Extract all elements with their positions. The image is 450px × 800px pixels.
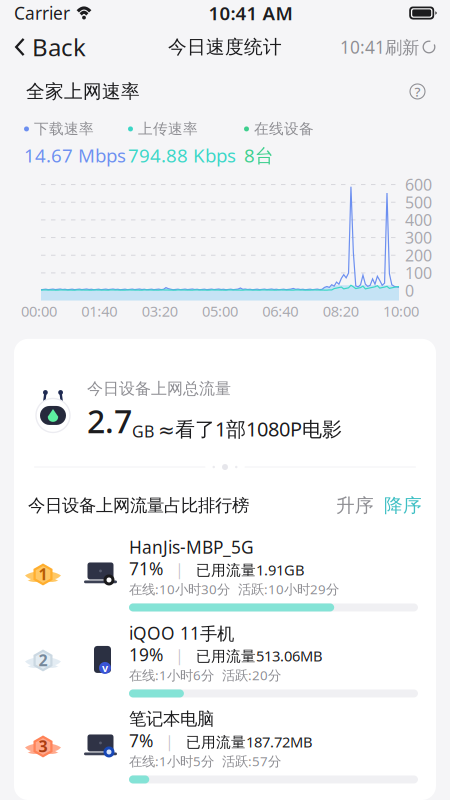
staticText: 升序: [336, 494, 374, 517]
staticText: |: [153, 730, 186, 751]
staticText: 7%: [129, 729, 153, 752]
staticText: 200: [405, 245, 432, 266]
staticText: 1: [38, 563, 47, 584]
staticText: |: [163, 558, 196, 579]
staticText: 10:00: [383, 301, 419, 321]
staticText: 在线设备: [254, 120, 314, 138]
button[interactable]: 降序: [384, 494, 422, 517]
staticText: Back: [32, 31, 86, 63]
staticText: ≈看了1部1080P电影: [158, 415, 342, 442]
staticText: 2: [38, 649, 47, 670]
staticText: 上传速率: [138, 120, 198, 138]
staticText: 794.88 Kbps: [128, 143, 236, 168]
staticText: 06:40: [262, 301, 298, 321]
button[interactable]: Back: [0, 25, 86, 69]
staticText: 14.67 Mbps: [24, 143, 126, 168]
staticText: 2.7: [87, 399, 132, 442]
staticText: 今日速度统计: [168, 35, 282, 58]
staticText: 100: [405, 262, 432, 283]
staticText: 08:20: [323, 301, 359, 321]
button[interactable]: Help: [409, 83, 426, 100]
button[interactable]: 10:41刷新: [340, 29, 450, 64]
staticText: 在线:10小时30分 活跃:10小时29分: [129, 580, 339, 598]
staticText: 已用流量1.91GB: [196, 560, 305, 579]
staticText: 500: [405, 192, 432, 213]
staticText: 3: [38, 735, 47, 756]
staticText: 已用流量187.72MB: [186, 732, 313, 751]
staticText: 8台: [244, 143, 274, 168]
button[interactable]: 升序: [336, 494, 374, 517]
staticText: iQOO 11手机: [129, 621, 234, 644]
staticText: 在线:1小时5分 活跃:57分: [129, 752, 281, 770]
staticText: 03:20: [142, 301, 178, 321]
staticText: 10:41 AM: [209, 1, 293, 25]
staticText: GB: [132, 421, 154, 442]
staticText: 0: [405, 280, 414, 301]
staticText: 下载速率: [34, 120, 94, 138]
staticText: 今日设备上网总流量: [87, 379, 231, 399]
staticText: 400: [405, 209, 432, 230]
staticText: 01:40: [81, 301, 117, 321]
staticText: 00:00: [21, 301, 57, 321]
staticText: 在线:1小时6分 活跃:20分: [129, 666, 281, 684]
staticText: 10:41刷新: [340, 35, 419, 58]
staticText: Carrier: [14, 1, 70, 24]
staticText: 300: [405, 227, 432, 248]
staticText: 600: [405, 174, 432, 195]
staticText: 05:00: [202, 301, 238, 321]
staticText: ?: [414, 83, 420, 100]
staticText: 19%: [129, 643, 163, 666]
staticText: 全家上网速率: [26, 80, 140, 103]
staticText: v: [102, 661, 108, 675]
staticText: 降序: [384, 494, 422, 517]
staticText: |: [163, 644, 196, 665]
staticText: 笔记本电脑: [129, 708, 214, 730]
staticText: HanJis-MBP_5G: [129, 535, 254, 558]
staticText: 71%: [129, 557, 163, 580]
staticText: 已用流量513.06MB: [196, 646, 323, 665]
staticText: 今日设备上网流量占比排行榜: [28, 495, 249, 516]
